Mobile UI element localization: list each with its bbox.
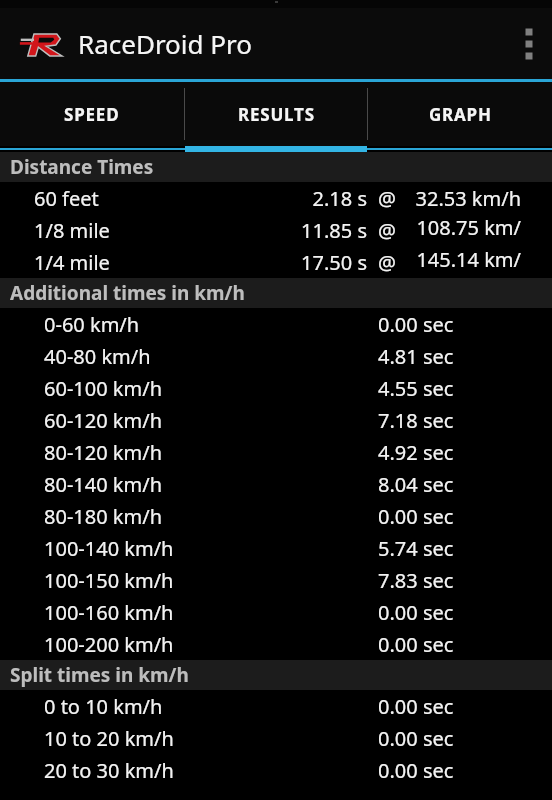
button[interactable]: 100-140 km/h: [0, 532, 552, 564]
staticText: 80-180 km/h: [44, 503, 163, 530]
staticText: RESULTS: [238, 103, 315, 126]
button[interactable]: 100-200 km/h: [0, 628, 552, 660]
staticText: 0-60 km/h: [44, 311, 140, 338]
staticText: 80-120 km/h: [44, 439, 163, 466]
button[interactable]: 60 feet: [0, 182, 552, 214]
button[interactable]: 20 to 30 km/h: [0, 754, 552, 786]
staticText: 60-120 km/h: [44, 407, 163, 434]
button[interactable]: 1/8 mile: [0, 214, 552, 246]
staticText: Distance Times: [10, 154, 154, 180]
staticText: Additional times in km/h: [10, 280, 245, 306]
button[interactable]: 0-60 km/h: [0, 308, 552, 340]
button[interactable]: 10 to 20 km/h: [0, 722, 552, 754]
staticText: 8.04 sec: [378, 471, 552, 498]
staticText: 100-160 km/h: [44, 599, 174, 626]
staticText: 32.53 km/h: [407, 185, 521, 212]
staticText: 4.92 sec: [378, 439, 552, 466]
staticText: 1/4 mile: [34, 249, 110, 276]
staticText: 1/8 mile: [34, 217, 110, 244]
staticText: 0.00 sec: [378, 725, 552, 752]
button[interactable]: SPEED: [0, 82, 184, 146]
staticText: @: [367, 249, 407, 276]
staticText: 10 to 20 km/h: [44, 725, 174, 752]
staticText: 0 to 10 km/h: [44, 693, 163, 720]
staticText: 17.50 s: [267, 249, 367, 276]
staticText: @: [367, 217, 407, 244]
staticText: 0.00 sec: [378, 599, 552, 626]
staticText: 145.14 km/h: [407, 246, 521, 278]
staticText: 4.55 sec: [378, 375, 552, 402]
staticText: 0.00 sec: [378, 757, 552, 784]
button[interactable]: GRAPH: [368, 82, 552, 146]
staticText: 4.81 sec: [378, 343, 552, 370]
button[interactable]: RESULTS: [184, 82, 368, 146]
staticText: Split times in km/h: [10, 662, 189, 688]
button[interactable]: 60-120 km/h: [0, 404, 552, 436]
staticText: 100-150 km/h: [44, 567, 174, 594]
button[interactable]: 100-150 km/h: [0, 564, 552, 596]
button[interactable]: 1/4 mile: [0, 246, 552, 278]
staticText: 11.85 s: [267, 217, 367, 244]
staticText: 2.18 s: [267, 185, 367, 212]
staticText: @: [367, 185, 407, 212]
staticText: GRAPH: [429, 103, 492, 126]
staticText: 5.74 sec: [378, 535, 552, 562]
staticText: 20 to 30 km/h: [44, 757, 174, 784]
button[interactable]: 80-180 km/h: [0, 500, 552, 532]
button[interactable]: 60-100 km/h: [0, 372, 552, 404]
staticText: 0.00 sec: [378, 503, 552, 530]
staticText: 60 feet: [34, 185, 99, 212]
button[interactable]: 0 to 10 km/h: [0, 690, 552, 722]
button[interactable]: 100-160 km/h: [0, 596, 552, 628]
staticText: 100-140 km/h: [44, 535, 174, 562]
staticText: 0.00 sec: [378, 693, 552, 720]
staticText: 40-80 km/h: [44, 343, 151, 370]
staticText: 60-100 km/h: [44, 375, 163, 402]
staticText: SPEED: [64, 103, 120, 126]
staticText: RaceDroid Pro: [78, 26, 252, 61]
button[interactable]: 80-140 km/h: [0, 468, 552, 500]
staticText: 7.83 sec: [378, 567, 552, 594]
staticText: 7.18 sec: [378, 407, 552, 434]
staticText: 100-200 km/h: [44, 631, 174, 658]
button[interactable]: 40-80 km/h: [0, 340, 552, 372]
staticText: 0.00 sec: [378, 311, 552, 338]
staticText: 108.75 km/h: [407, 214, 521, 246]
staticText: 80-140 km/h: [44, 471, 163, 498]
button[interactable]: 80-120 km/h: [0, 436, 552, 468]
staticText: 0.00 sec: [378, 631, 552, 658]
button[interactable]: More options: [506, 8, 552, 79]
